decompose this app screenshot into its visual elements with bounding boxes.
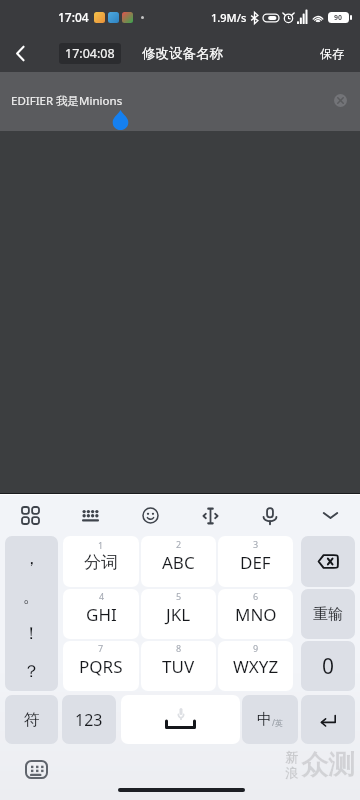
staticText: 7 [98, 642, 104, 654]
staticText: 。 [23, 586, 40, 607]
button[interactable]: 7 [63, 641, 139, 691]
button[interactable]: Emoji [120, 495, 180, 536]
staticText: ？ [23, 661, 40, 682]
staticText: 5 [176, 590, 182, 602]
button[interactable]: 4 [63, 589, 139, 639]
staticText: 修改设备名称 [142, 45, 223, 62]
staticText: 分词 [84, 552, 118, 573]
button[interactable]: Space [121, 695, 240, 744]
staticText: 保存 [320, 46, 344, 61]
staticText: 17:04:08 [65, 45, 115, 62]
button[interactable]: 3 [218, 536, 293, 587]
button[interactable]: 1 [63, 536, 139, 587]
button[interactable]: Keyboard layout [60, 495, 120, 536]
staticText: 符 [24, 710, 40, 730]
button[interactable]: 123 [62, 695, 116, 744]
staticText: 0 [322, 652, 335, 681]
button[interactable]: 中英切换 [242, 695, 298, 744]
staticText: DEF [240, 551, 271, 574]
staticText: GHI [86, 603, 117, 626]
button[interactable]: Move cursor [180, 495, 240, 536]
staticText: 1 [98, 539, 104, 551]
staticText: 众测 [301, 748, 355, 782]
staticText: 17:04 [58, 9, 89, 25]
staticText: 90 [334, 13, 343, 23]
staticText: 中 [257, 710, 272, 729]
staticText: 9 [253, 642, 259, 654]
staticText: WXYZ [233, 655, 279, 678]
button[interactable]: Clear text [334, 94, 347, 107]
staticText: /英 [272, 717, 283, 728]
staticText: TUV [162, 655, 195, 678]
button[interactable]: 5 [141, 589, 216, 639]
button[interactable]: 9 [218, 641, 293, 691]
button[interactable]: Backspace [301, 536, 355, 587]
staticText: 6 [253, 590, 259, 602]
button[interactable]: Hide keyboard [300, 495, 360, 536]
button[interactable]: Voice input [240, 495, 300, 536]
button[interactable]: Switch input method [25, 760, 48, 779]
staticText: 8 [176, 642, 182, 654]
staticText: 新 [285, 749, 298, 765]
staticText: 2 [176, 538, 182, 550]
staticText: ！ [23, 623, 40, 644]
staticText: ， [23, 548, 40, 569]
staticText: 3 [253, 538, 259, 550]
button[interactable]: 重输 [301, 589, 355, 639]
staticText: JKL [166, 603, 191, 626]
button[interactable]: 8 [141, 641, 216, 691]
staticText: ABC [162, 551, 195, 574]
staticText: PQRS [79, 655, 123, 678]
button[interactable]: Punctuation [5, 536, 58, 691]
staticText: MNO [235, 603, 277, 626]
button[interactable]: Back [0, 34, 40, 72]
staticText: 4 [99, 590, 105, 602]
button[interactable]: 保存 [304, 37, 360, 70]
staticText: 1.9M/s [211, 10, 247, 25]
button[interactable]: 0 [301, 641, 355, 691]
button[interactable]: 符 [5, 695, 58, 744]
staticText: EDIFIER 我是Minions [11, 93, 123, 109]
button[interactable]: Enter [301, 695, 355, 744]
staticText: 123 [75, 709, 103, 731]
staticText: 浪 [285, 765, 298, 781]
button[interactable]: 6 [218, 589, 293, 639]
button[interactable]: Apps [0, 495, 60, 536]
button[interactable]: 2 [141, 536, 216, 587]
staticText: 重输 [313, 605, 343, 624]
